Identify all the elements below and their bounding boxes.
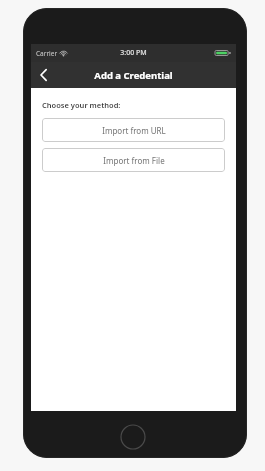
staticText: 3:00 PM [120, 48, 147, 58]
staticText: Carrier [36, 49, 58, 58]
button[interactable]: Home [120, 424, 146, 450]
button[interactable]: Back [31, 62, 55, 88]
staticText: Choose your method: [42, 100, 121, 110]
staticText: Import from URL [102, 125, 166, 136]
staticText: Add a Credential [94, 69, 173, 82]
staticText: Import from File [103, 155, 165, 166]
button[interactable]: Import from URL [42, 118, 225, 142]
button[interactable]: Import from File [42, 148, 225, 172]
